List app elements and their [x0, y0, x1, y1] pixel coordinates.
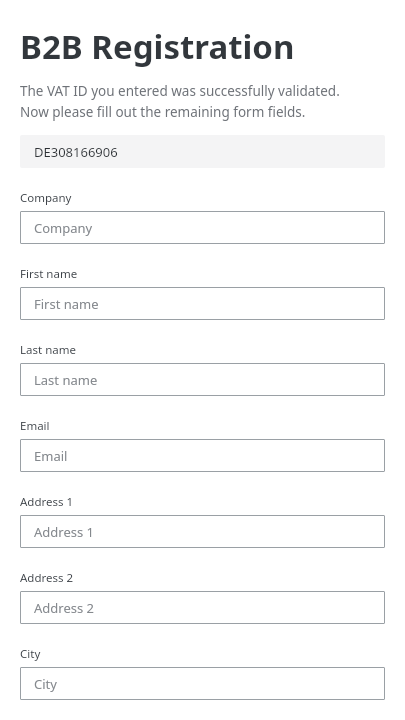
- staticText: Company: [34, 219, 93, 237]
- button[interactable]: First name: [20, 287, 385, 320]
- button[interactable]: Address 2: [20, 591, 385, 624]
- button[interactable]: Company: [20, 211, 385, 244]
- staticText: Address 2: [34, 599, 95, 617]
- staticText: City: [20, 646, 41, 662]
- staticText: Last name: [34, 371, 98, 389]
- staticText: Last name: [20, 342, 76, 358]
- staticText: Company: [20, 190, 72, 206]
- staticText: Email: [34, 447, 68, 465]
- staticText: First name: [20, 266, 78, 282]
- button[interactable]: Email: [20, 439, 385, 472]
- staticText: B2B Registration: [20, 24, 295, 69]
- button[interactable]: City: [20, 667, 385, 700]
- staticText: Address 1: [20, 494, 74, 510]
- button[interactable]: Address 1: [20, 515, 385, 548]
- staticText: DE308166906: [34, 143, 118, 161]
- staticText: The VAT ID you entered was successfully …: [20, 82, 340, 121]
- staticText: First name: [34, 295, 99, 313]
- staticText: Address 1: [34, 523, 95, 541]
- staticText: Address 2: [20, 570, 74, 586]
- staticText: City: [34, 675, 57, 693]
- button[interactable]: DE308166906: [20, 135, 385, 168]
- button[interactable]: Last name: [20, 363, 385, 396]
- staticText: Email: [20, 418, 50, 434]
